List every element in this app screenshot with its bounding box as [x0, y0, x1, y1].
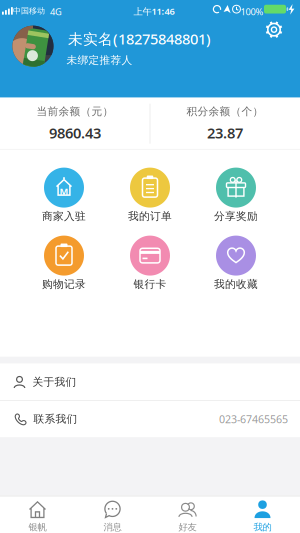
staticText: 上午11:46	[133, 5, 174, 17]
staticText: 关于我们	[32, 375, 76, 388]
staticText: 9860.43	[49, 123, 101, 142]
staticText: 023-67465565	[219, 412, 288, 426]
staticText: 消息	[103, 521, 121, 533]
staticText: 商家入驻	[42, 210, 86, 223]
button[interactable]: 当前余额（元）	[0, 98, 150, 150]
staticText: 我的收藏	[214, 278, 258, 291]
button[interactable]: M	[21, 168, 107, 223]
button[interactable]: 我的	[225, 496, 300, 533]
button[interactable]: 我的收藏	[193, 236, 279, 291]
button[interactable]: 消息	[75, 496, 150, 533]
staticText: 分享奖励	[214, 210, 258, 223]
button[interactable]: 银帆	[0, 496, 75, 533]
button[interactable]: 购物记录	[21, 236, 107, 291]
staticText: 银帆	[28, 521, 46, 533]
button[interactable]: 好友	[150, 496, 225, 533]
staticText: 未实名(18275848801)	[68, 29, 211, 49]
staticText: 银行卡	[133, 278, 166, 291]
staticText: 好友	[178, 521, 196, 533]
button[interactable]: 头像	[12, 26, 53, 67]
button[interactable]: 联系我们	[0, 401, 300, 437]
staticText: 未绑定推荐人	[66, 54, 132, 67]
staticText: 我的	[253, 521, 271, 533]
staticText: 100%	[240, 5, 263, 18]
staticText: M	[59, 185, 68, 197]
button[interactable]: 银行卡	[107, 236, 193, 291]
button[interactable]: 关于我们	[0, 364, 300, 400]
staticText: 23.87	[207, 123, 243, 142]
button[interactable]: 设置	[264, 20, 284, 40]
staticText: 中国移动	[13, 6, 45, 16]
staticText: 当前余额（元）	[36, 105, 113, 118]
button[interactable]: 分享奖励	[193, 168, 279, 223]
button[interactable]: 我的订单	[107, 168, 193, 223]
staticText: 我的订单	[128, 210, 172, 223]
button[interactable]: 积分余额（个）	[150, 98, 300, 150]
staticText: 积分余额（个）	[186, 105, 263, 118]
staticText: 购物记录	[42, 278, 86, 291]
staticText: 4G	[50, 5, 62, 18]
staticText: 联系我们	[33, 412, 77, 425]
